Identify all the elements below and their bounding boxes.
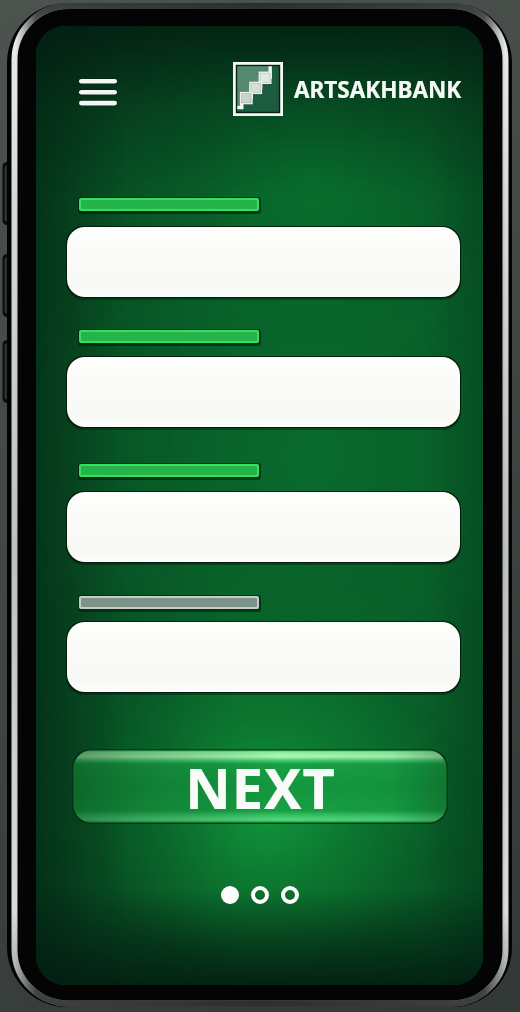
- button[interactable]: Input field: [63, 353, 464, 431]
- staticText: NEXT: [185, 749, 336, 824]
- staticText: ARTSAKHBANK: [294, 74, 462, 105]
- button[interactable]: Input field: [63, 618, 464, 696]
- button[interactable]: Input field: [63, 223, 464, 301]
- button[interactable]: Menu: [72, 70, 124, 114]
- button[interactable]: NEXT: [72, 749, 448, 824]
- button[interactable]: Input field: [63, 488, 464, 566]
